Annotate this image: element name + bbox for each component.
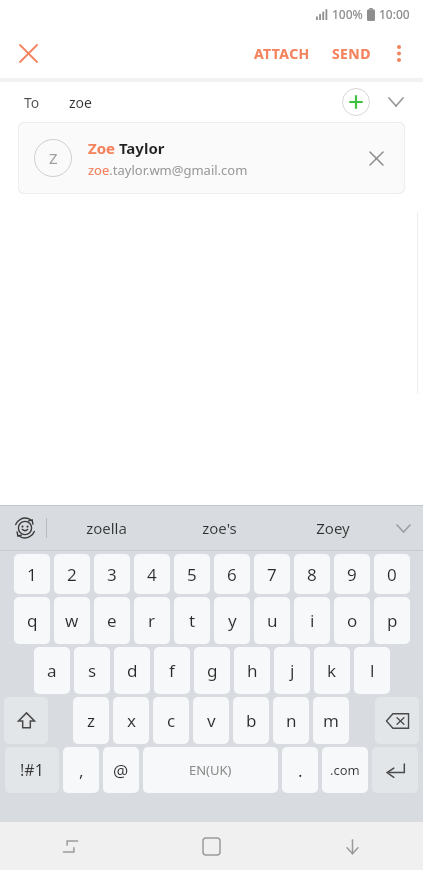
button[interactable]: Recents [0, 822, 141, 870]
button[interactable]: q [14, 597, 50, 644]
button[interactable]: Hide keyboard [282, 822, 423, 870]
button[interactable]: d [114, 647, 150, 694]
staticText: !#1 [20, 759, 44, 781]
button[interactable]: s [74, 647, 110, 694]
button[interactable]: e [94, 597, 130, 644]
button[interactable]: y [214, 597, 250, 644]
button[interactable]: 9 [334, 554, 370, 594]
staticText: m [323, 709, 339, 732]
button[interactable]: r [134, 597, 170, 644]
staticText: h [247, 659, 258, 682]
staticText: 10:00 [379, 6, 410, 22]
button[interactable]: zoe's [163, 506, 276, 550]
button[interactable]: w [54, 597, 90, 644]
button[interactable]: n [273, 697, 309, 744]
button[interactable]: f [154, 647, 190, 694]
button[interactable]: Home [141, 822, 282, 870]
button[interactable]: c [153, 697, 189, 744]
button[interactable]: Remove recipient [359, 141, 393, 175]
staticText: ATTACH [254, 44, 310, 63]
staticText: zoella [86, 518, 127, 538]
staticText: e [107, 609, 117, 632]
button[interactable]: a [34, 647, 70, 694]
button[interactable]: 7 [254, 554, 290, 594]
button[interactable]: Z [18, 122, 405, 194]
button[interactable]: v [193, 697, 229, 744]
button[interactable]: u [254, 597, 290, 644]
button[interactable]: . [282, 747, 318, 793]
staticText: SEND [332, 44, 371, 63]
staticText: p [387, 609, 398, 632]
button[interactable]: Add recipient [341, 87, 371, 117]
staticText: n [286, 709, 297, 732]
button[interactable]: @ [103, 747, 139, 793]
button[interactable]: 8 [294, 554, 330, 594]
button[interactable]: t [174, 597, 210, 644]
staticText: , [79, 759, 84, 782]
staticText: d [127, 659, 138, 682]
button[interactable]: g [194, 647, 230, 694]
staticText: 4 [147, 563, 157, 586]
staticText: s [88, 659, 97, 682]
staticText: 2 [67, 563, 77, 586]
staticText: 100% [332, 6, 363, 22]
staticText: 5 [187, 563, 197, 586]
button[interactable]: x [113, 697, 149, 744]
staticText: v [207, 709, 216, 732]
button[interactable]: m [313, 697, 349, 744]
staticText: l [370, 659, 375, 682]
button[interactable]: ATTACH [248, 36, 316, 71]
staticText: i [310, 609, 315, 632]
staticText: Zoey [316, 518, 350, 538]
staticText: w [65, 609, 79, 632]
button[interactable]: z [73, 697, 109, 744]
staticText: Z [49, 148, 58, 168]
button[interactable]: , [63, 747, 99, 793]
staticText: zoe's [202, 518, 237, 538]
button[interactable]: 2 [54, 554, 90, 594]
button[interactable]: 3 [94, 554, 130, 594]
button[interactable]: Expand recipients [379, 85, 413, 119]
staticText: k [327, 659, 337, 682]
button[interactable]: p [374, 597, 410, 644]
button[interactable]: Close [10, 35, 46, 71]
staticText: Zoe Taylor [88, 138, 165, 158]
staticText: o [347, 609, 358, 632]
staticText: zoe.taylor.wm@gmail.com [88, 161, 248, 179]
staticText: 6 [227, 563, 237, 586]
staticText: r [148, 609, 156, 632]
button[interactable]: !#1 [5, 747, 59, 793]
button[interactable]: i [294, 597, 330, 644]
button[interactable]: o [334, 597, 370, 644]
button[interactable]: Zoey [276, 506, 389, 550]
staticText: 9 [347, 563, 357, 586]
button[interactable]: EN(UK) [143, 747, 278, 793]
button[interactable]: Enter [372, 747, 418, 793]
staticText: 1 [27, 563, 37, 586]
button[interactable]: More options [381, 35, 417, 71]
button[interactable]: b [233, 697, 269, 744]
button[interactable]: l [354, 647, 390, 694]
button[interactable]: 0 [374, 554, 410, 594]
button[interactable]: Emoji [6, 509, 44, 547]
button[interactable]: 5 [174, 554, 210, 594]
button[interactable]: zoella [50, 506, 163, 550]
button[interactable]: j [274, 647, 310, 694]
button[interactable]: h [234, 647, 270, 694]
staticText: q [27, 609, 38, 632]
staticText: b [246, 709, 257, 732]
staticText: j [290, 659, 295, 682]
button[interactable]: 1 [14, 554, 50, 594]
button[interactable]: More suggestions [387, 512, 419, 544]
staticText: . [298, 759, 303, 782]
staticText: 8 [307, 563, 317, 586]
button[interactable]: Shift [4, 697, 48, 744]
button[interactable]: k [314, 647, 350, 694]
button[interactable]: Backspace [375, 697, 419, 744]
staticText: u [267, 609, 278, 632]
button[interactable]: .com [322, 747, 368, 793]
button[interactable]: SEND [326, 36, 377, 71]
button[interactable]: 4 [134, 554, 170, 594]
staticText: .com [330, 761, 360, 779]
button[interactable]: 6 [214, 554, 250, 594]
